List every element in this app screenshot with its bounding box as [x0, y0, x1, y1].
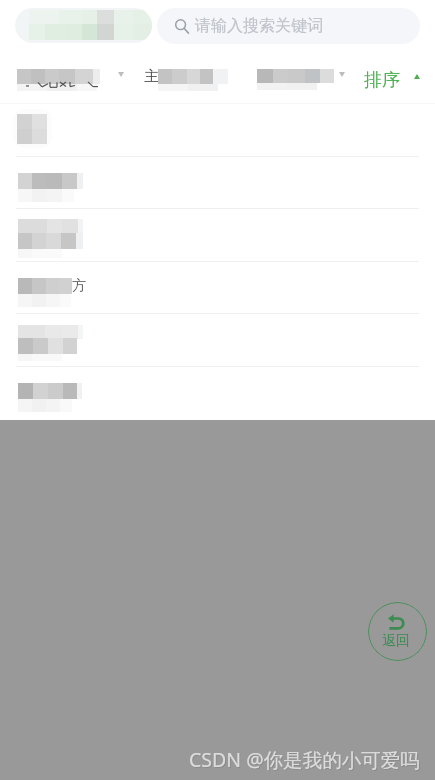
button[interactable]: 请输入搜索关键词 [157, 8, 420, 44]
staticText: 主 [144, 67, 159, 86]
button[interactable] [0, 207, 435, 259]
button[interactable] [0, 362, 435, 414]
button[interactable] [360, 62, 422, 90]
staticText: 方 [72, 277, 86, 295]
button[interactable] [0, 104, 435, 156]
staticText: 请输入搜索关键词 [195, 16, 323, 36]
button[interactable]: 返回 [368, 602, 427, 661]
staticText: 返回 [382, 632, 410, 650]
staticText: CSDN @你是我的小可爱吗 [189, 746, 420, 773]
button[interactable] [0, 310, 435, 362]
button[interactable] [15, 8, 152, 43]
button[interactable] [0, 155, 435, 207]
staticText: CSDN @你是我的小可爱吗 [190, 747, 421, 774]
button[interactable] [0, 258, 435, 310]
staticText: 排序 [364, 69, 400, 92]
button[interactable] [14, 62, 126, 90]
button[interactable] [142, 62, 357, 90]
